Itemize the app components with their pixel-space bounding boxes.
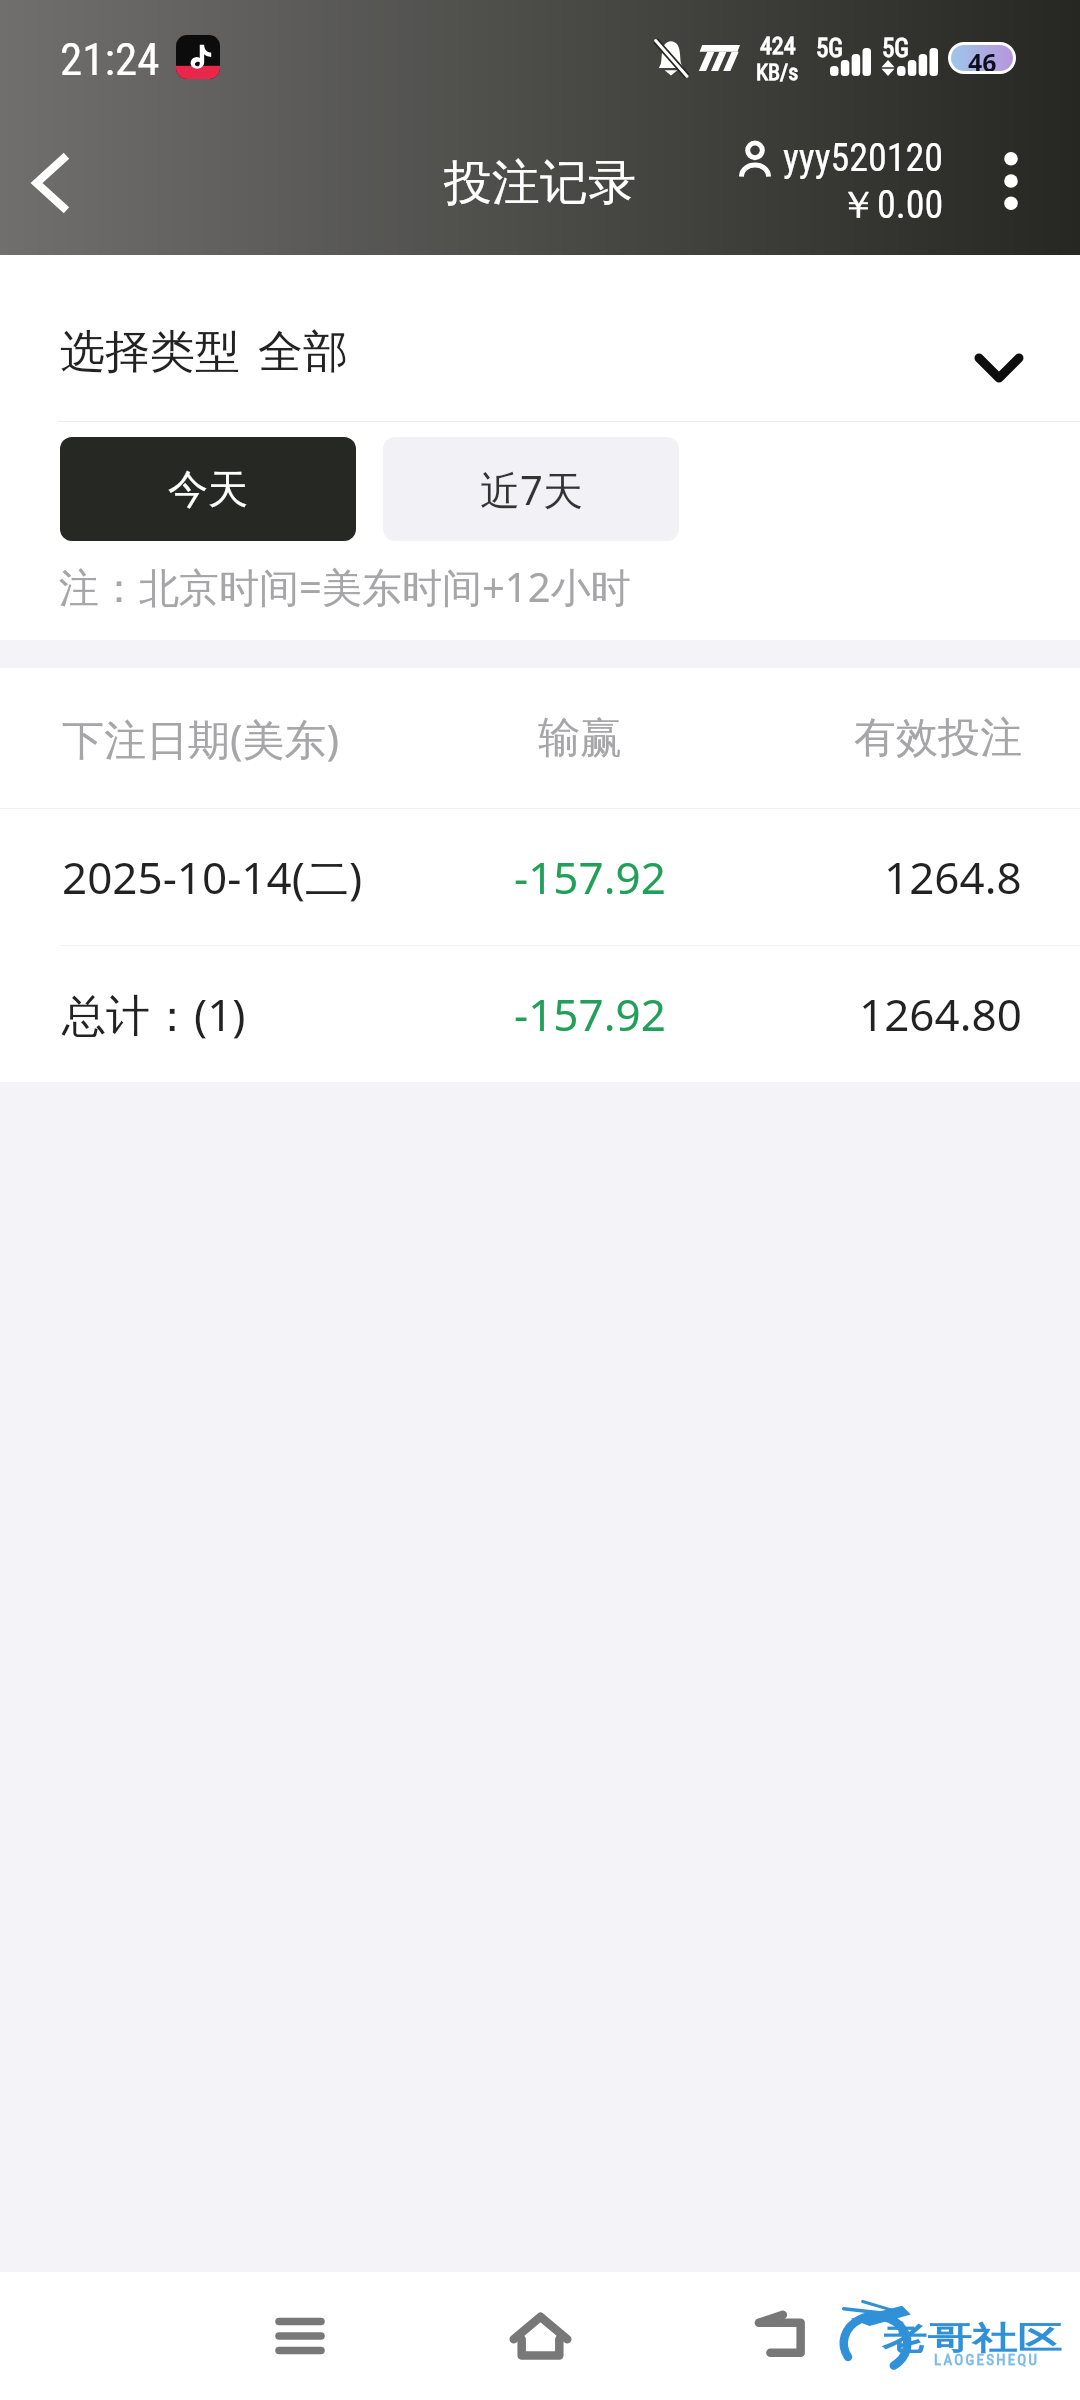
staticText: 输赢 [538,712,622,765]
staticText: 5G [816,34,844,63]
button[interactable]: 总计：(1) [0,946,1080,1082]
staticText: -157.92 [514,847,666,907]
button[interactable]: More options [975,126,1047,236]
staticText: 近7天 [480,462,583,517]
staticText: 21:24 [60,33,160,86]
staticText: 注：北京时间=美东时间+12小时 [59,559,631,614]
staticText: -157.92 [514,984,666,1044]
staticText: 投注记录 [444,153,636,213]
staticText: LAOGESHEQU [934,2351,1040,2369]
staticText: KB/s [756,60,799,86]
button[interactable]: Home [490,2286,590,2386]
staticText: 老哥社区 [882,2319,1062,2359]
button[interactable]: 近7天 [383,437,679,541]
staticText: 2025-10-14(二) [62,847,363,907]
staticText: 选择类型 [60,324,240,381]
button[interactable]: 今天 [60,437,356,541]
staticText: 1264.80 [859,984,1022,1044]
staticText: yyy520120 [783,136,944,181]
staticText: 46 [968,45,997,71]
button[interactable]: yyy520120 [738,136,944,229]
staticText: 5G [882,34,910,63]
staticText: 1264.8 [884,847,1022,907]
button[interactable]: Recent apps [250,2286,350,2386]
staticText: 下注日期(美东) [62,710,340,767]
button[interactable]: Back [8,141,92,225]
staticText: 今天 [168,464,248,514]
button[interactable]: Back [730,2286,830,2386]
staticText: 424 [760,32,796,60]
staticText: 总计：(1) [62,984,246,1044]
staticText: 全部 [258,324,348,381]
button[interactable]: 2025-10-14(二) [0,809,1080,945]
staticText: ￥0.00 [839,181,944,229]
staticText: 有效投注 [854,712,1022,765]
button[interactable]: 选择类型 [0,255,1080,421]
